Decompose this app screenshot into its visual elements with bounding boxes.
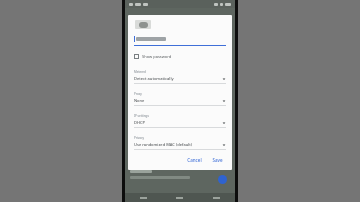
button[interactable]: Add network: [218, 175, 227, 184]
button[interactable]: Home: [161, 193, 198, 202]
button[interactable]: Show password: [134, 53, 226, 60]
staticText: Detect automatically: [134, 76, 222, 81]
button[interactable]: Recents: [198, 193, 235, 202]
button[interactable]: Metered: [134, 66, 226, 85]
staticText: Privacy: [134, 136, 145, 140]
button[interactable]: Privacy: [134, 132, 226, 151]
staticText: Cancel: [187, 157, 202, 163]
button[interactable]: Back: [125, 193, 161, 202]
staticText: Show password: [142, 54, 172, 59]
button[interactable]: [134, 36, 226, 46]
button[interactable]: Proxy: [134, 88, 226, 107]
staticText: Metered: [134, 70, 146, 74]
staticText: Use randomized MAC (default): [134, 142, 222, 147]
button[interactable]: Cancel: [184, 155, 205, 165]
button[interactable]: IP settings: [134, 110, 226, 129]
staticText: DHCP: [134, 120, 222, 125]
staticText: Proxy: [134, 92, 142, 96]
button[interactable]: Save: [209, 155, 226, 165]
staticText: None: [134, 98, 222, 103]
staticText: IP settings: [134, 114, 149, 118]
staticText: Save: [212, 157, 223, 163]
